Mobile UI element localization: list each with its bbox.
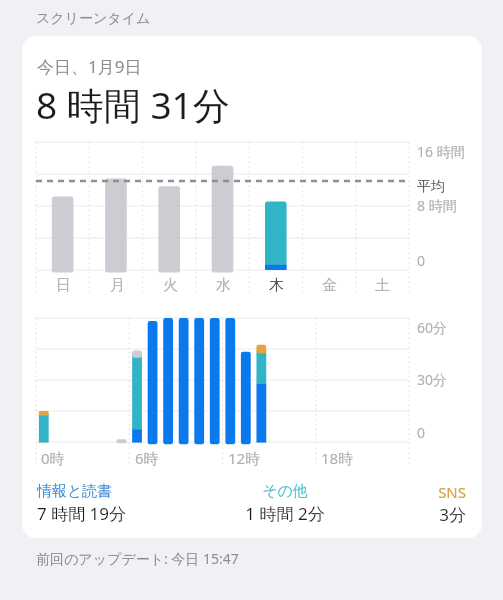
staticText: 8 時間 xyxy=(417,196,457,215)
staticText: 日 xyxy=(56,276,71,295)
staticText: 60分 xyxy=(417,318,448,337)
staticText: 木 xyxy=(269,276,284,295)
staticText: 1 時間 2分 xyxy=(202,502,368,525)
staticText: 0 xyxy=(417,423,426,442)
staticText: SNS xyxy=(368,482,466,502)
staticText: その他 xyxy=(202,482,368,501)
staticText: 火 xyxy=(163,276,178,295)
staticText: 8 時間 31分 xyxy=(36,79,230,130)
button[interactable]: 情報と読書 xyxy=(37,482,202,525)
staticText: 水 xyxy=(216,276,231,295)
staticText: 7 時間 19分 xyxy=(37,502,202,525)
staticText: 0 xyxy=(417,251,426,270)
staticText: 16 時間 xyxy=(417,142,465,161)
staticText: 情報と読書 xyxy=(37,482,202,501)
staticText: 30分 xyxy=(417,370,448,389)
staticText: 月 xyxy=(110,276,125,295)
staticText: 今日、1月9日 xyxy=(37,55,142,78)
button[interactable]: 今日、1月9日 xyxy=(22,36,482,538)
staticText: 平均 xyxy=(417,178,445,196)
staticText: 前回のアップデート: 今日 15:47 xyxy=(36,549,239,568)
staticText: 3分 xyxy=(368,503,466,526)
button[interactable]: その他 xyxy=(202,482,368,525)
staticText: 18時 xyxy=(321,448,354,468)
staticText: スクリーンタイム xyxy=(36,10,151,28)
staticText: 12時 xyxy=(228,448,261,468)
staticText: 6時 xyxy=(135,448,159,468)
button[interactable]: SNS xyxy=(368,482,466,526)
staticText: 金 xyxy=(322,276,337,295)
staticText: 0時 xyxy=(41,448,65,468)
staticText: 土 xyxy=(375,276,390,295)
